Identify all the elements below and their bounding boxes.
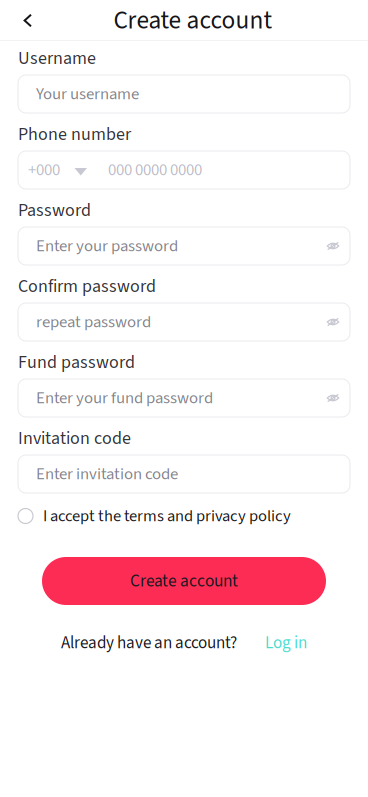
staticText: Fund password [18,350,135,375]
staticText: Confirm password [18,274,156,299]
staticText: I accept the terms and privacy policy [43,504,291,528]
button[interactable]: Show password [316,303,350,341]
staticText: Enter your password [36,234,178,258]
button[interactable]: Select country dialling code [18,151,98,189]
staticText: Already have an account? [61,631,237,655]
staticText: Log in [265,631,307,655]
staticText: Username [18,46,96,71]
staticText: Password [18,198,91,223]
staticText: repeat password [36,310,151,334]
button[interactable]: I accept the terms and privacy policy [18,505,350,527]
button[interactable]: Show password [316,379,350,417]
staticText: 000 0000 0000 [108,158,202,182]
staticText: Your username [36,82,139,106]
staticText: Invitation code [18,426,131,451]
button[interactable]: Show password [316,227,350,265]
staticText: Create account [130,569,238,593]
staticText: Phone number [18,122,131,147]
staticText: Create account [113,2,272,39]
staticText: +000 [28,158,60,182]
button[interactable]: Back [6,0,50,41]
button[interactable]: Log in [237,632,307,654]
button[interactable]: Create account [42,557,326,605]
staticText: Enter invitation code [36,462,178,486]
staticText: Enter your fund password [36,386,213,410]
